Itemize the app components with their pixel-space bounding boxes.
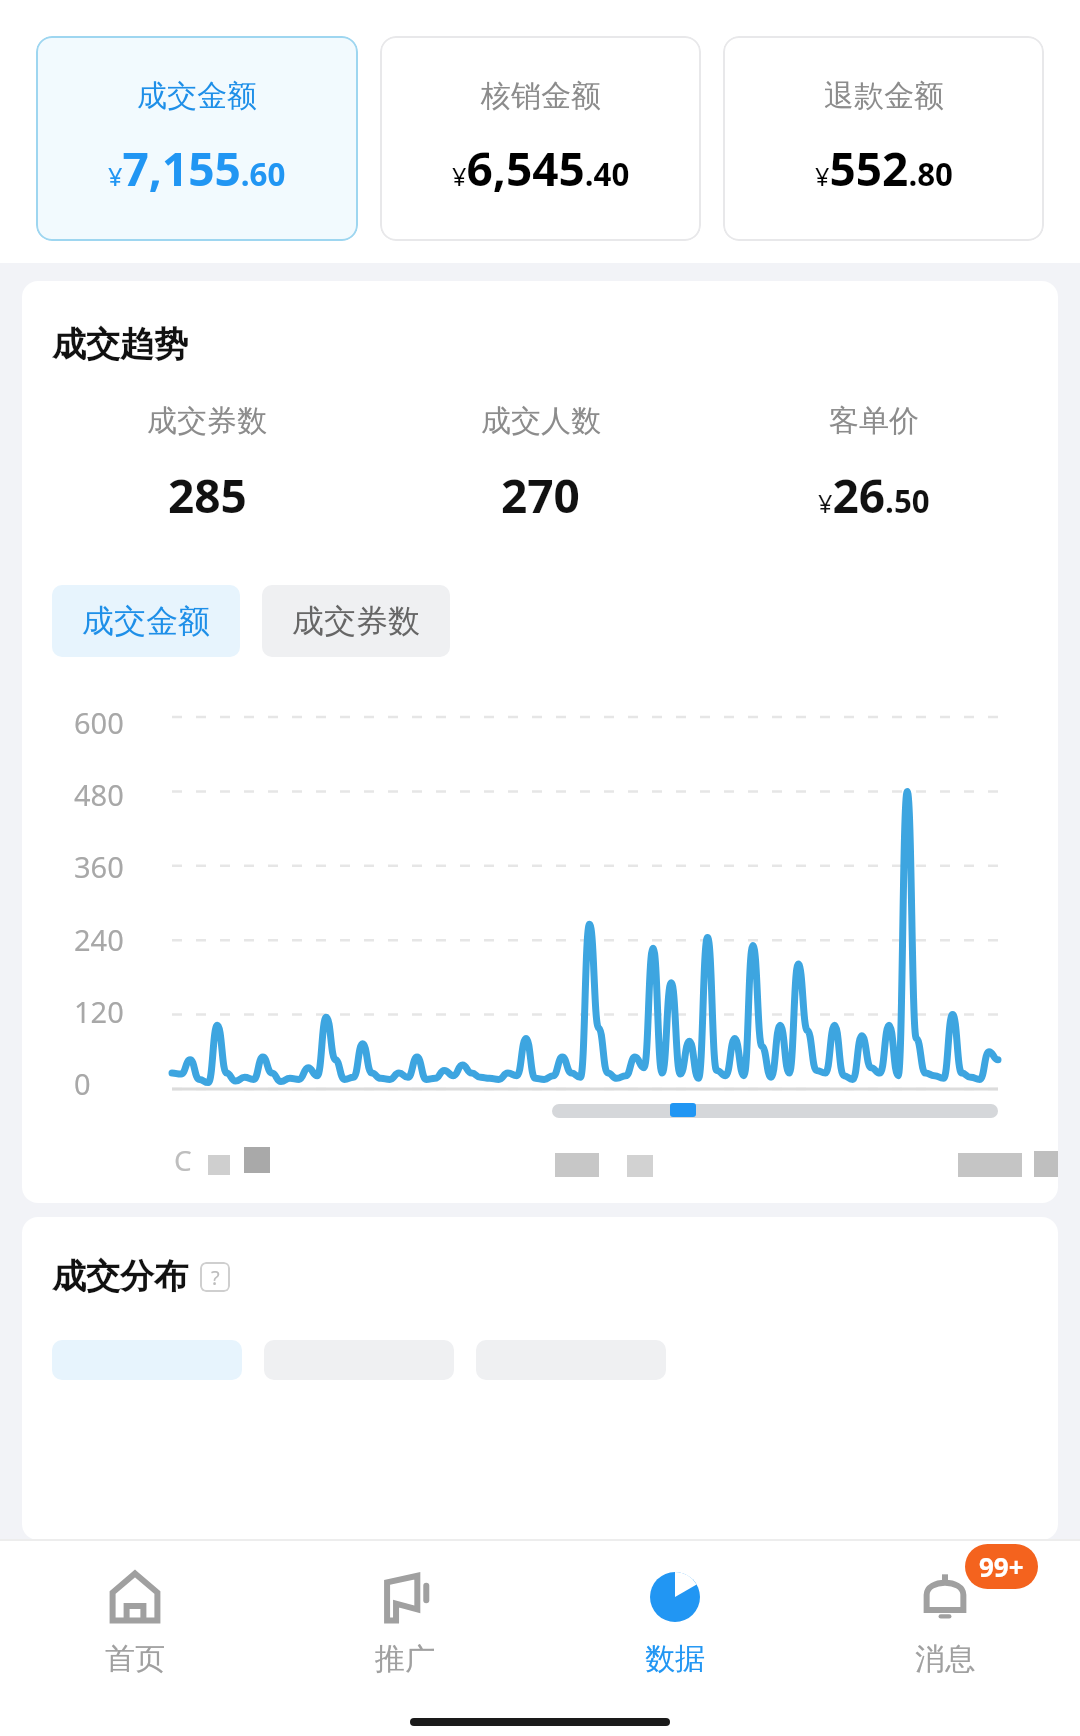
staticText: 成交券数 [292, 601, 420, 641]
staticText: 0 [74, 1064, 91, 1103]
staticText: 120 [74, 992, 124, 1031]
staticText: 成交趋势 [52, 323, 188, 366]
button[interactable]: 数据 [540, 1566, 810, 1678]
staticText: 客单价 [829, 402, 919, 440]
button[interactable]: 退款金额 [723, 36, 1044, 241]
button[interactable]: 核销金额 [380, 36, 701, 241]
staticText: 285 [168, 464, 247, 527]
staticText: 成交人数 [481, 402, 601, 440]
staticText: 成交券数 [147, 402, 267, 440]
staticText: 首页 [105, 1640, 165, 1678]
button[interactable]: 推广 [270, 1566, 540, 1678]
staticText: 480 [74, 775, 124, 814]
staticText: 成交金额 [82, 601, 210, 641]
staticText: 600 [74, 703, 124, 742]
button[interactable]: 成交券数 [262, 585, 450, 657]
staticText: ¥26.50 [818, 464, 930, 527]
button[interactable]: 成交金额 [52, 585, 240, 657]
staticText: 消息 [915, 1640, 975, 1678]
staticText: ? [211, 1264, 220, 1291]
staticText: 240 [74, 920, 124, 959]
staticText: 360 [74, 847, 124, 886]
staticText: 99+ [979, 1549, 1024, 1584]
staticText: 核销金额 [481, 77, 601, 115]
button[interactable]: 帮助 [200, 1262, 230, 1292]
staticText: 成交分布 [52, 1255, 188, 1298]
button[interactable]: 消息 [810, 1566, 1080, 1678]
staticText: ¥6,545.40 [452, 137, 630, 200]
staticText: 推广 [375, 1640, 435, 1678]
staticText: ¥7,155.60 [108, 137, 286, 200]
staticText: 成交金额 [137, 77, 257, 115]
button[interactable]: 成交金额 [36, 36, 358, 241]
staticText: ¥552.80 [815, 137, 953, 200]
staticText: 270 [501, 464, 580, 527]
button[interactable]: 首页 [0, 1566, 270, 1678]
staticText: 退款金额 [824, 77, 944, 115]
staticText: C [174, 1141, 192, 1177]
staticText: 数据 [645, 1640, 705, 1678]
